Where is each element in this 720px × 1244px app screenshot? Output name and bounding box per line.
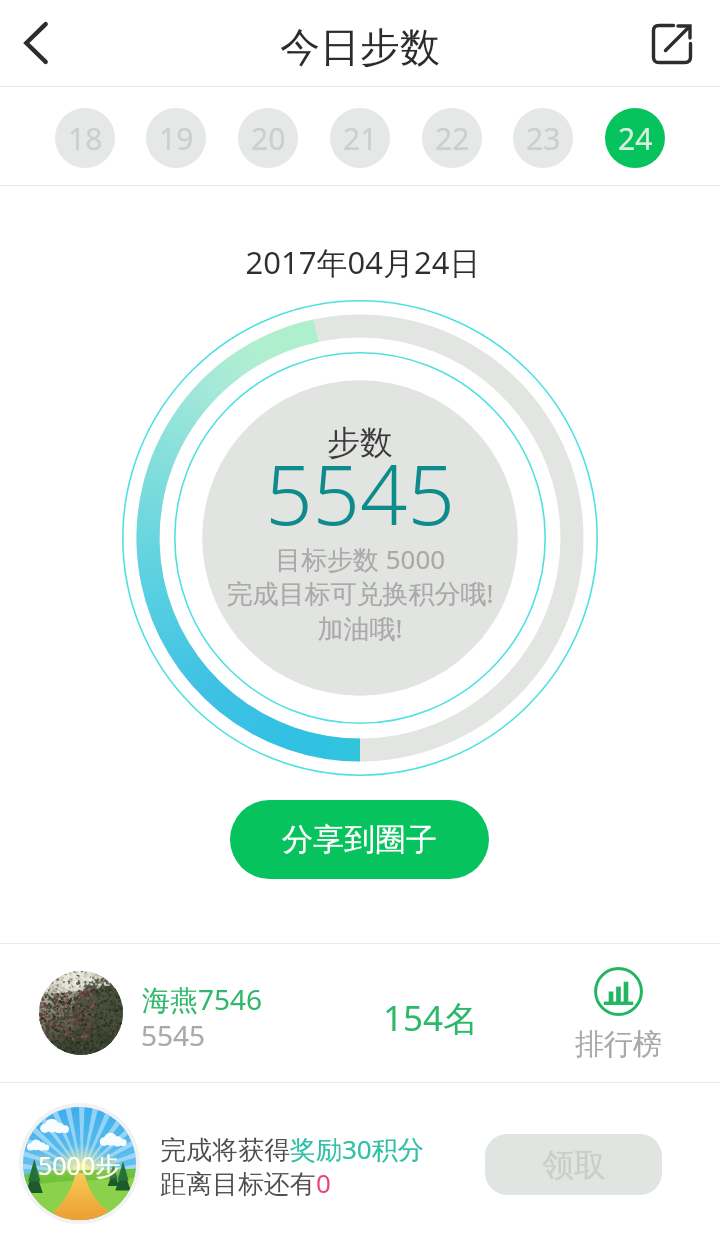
button[interactable]: 领取 — [485, 1134, 662, 1195]
button[interactable]: 排行榜 — [570, 965, 666, 1063]
staticText: 今日步数 — [280, 22, 440, 72]
staticText: 2017年04月24日 — [3, 241, 720, 283]
button[interactable]: 22 — [422, 108, 482, 168]
staticText: 19 — [159, 118, 194, 159]
button[interactable]: 19 — [146, 108, 206, 168]
button[interactable]: 分享到圈子 — [230, 800, 489, 879]
staticText: 领取 — [542, 1145, 606, 1185]
button[interactable]: 20 — [238, 108, 298, 168]
button[interactable]: 海燕7546 — [0, 944, 720, 1082]
button[interactable]: 21 — [330, 108, 390, 168]
button[interactable]: 23 — [513, 108, 573, 168]
staticText: 5545 — [141, 1016, 206, 1054]
staticText: 步数 — [0, 422, 720, 464]
button[interactable]: 24 — [605, 108, 665, 168]
button[interactable]: 18 — [55, 108, 115, 168]
staticText: 21 — [343, 118, 378, 159]
staticText: 分享到圈子 — [282, 820, 437, 859]
staticText: 24 — [618, 118, 653, 159]
staticText: 5545 — [0, 436, 720, 549]
staticText: 5000步 — [38, 1148, 121, 1182]
button[interactable]: Back — [0, 0, 86, 86]
staticText: 目标步数 5000 完成目标可兑换积分哦! 加油哦! — [0, 541, 720, 646]
staticText: 22 — [435, 118, 470, 159]
staticText: 18 — [68, 118, 103, 159]
staticText: 20 — [251, 118, 286, 159]
button[interactable]: Share — [634, 0, 720, 86]
staticText: 154名 — [383, 994, 479, 1042]
staticText: 完成将获得奖励30积分 — [160, 1131, 424, 1167]
staticText: 23 — [526, 118, 561, 159]
staticText: 海燕7546 — [142, 980, 263, 1018]
staticText: 排行榜 — [575, 1026, 662, 1063]
staticText: 距离目标还有0 — [160, 1165, 331, 1201]
